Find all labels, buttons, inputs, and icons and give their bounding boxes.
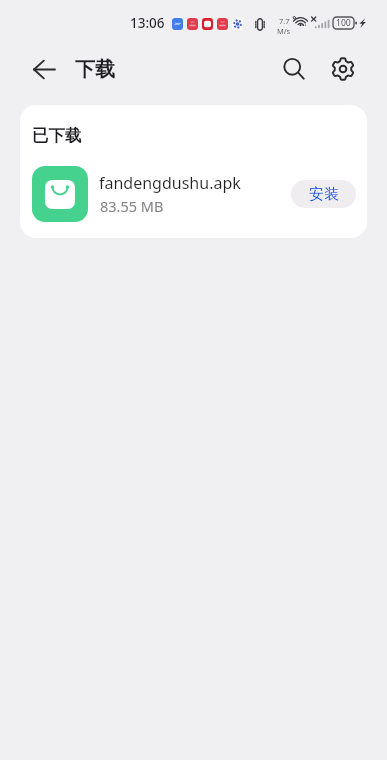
staticText: 安装 — [309, 185, 339, 204]
button[interactable]: 安装 — [291, 180, 356, 208]
staticText: 下载 — [75, 57, 115, 82]
staticText: 已下载 — [32, 125, 82, 146]
button[interactable]: fandengdushu.apk — [20, 157, 367, 230]
staticText: 83.55 MB — [100, 196, 164, 216]
button[interactable]: Back — [22, 47, 66, 91]
staticText: M/s — [277, 26, 291, 36]
staticText: 13:06 — [130, 14, 165, 32]
staticText: 7.7 — [279, 16, 290, 26]
staticText: 100 — [336, 17, 351, 29]
staticText: fandengdushu.apk — [99, 172, 241, 194]
button[interactable]: Settings — [321, 47, 365, 91]
button[interactable]: Search — [272, 47, 316, 91]
